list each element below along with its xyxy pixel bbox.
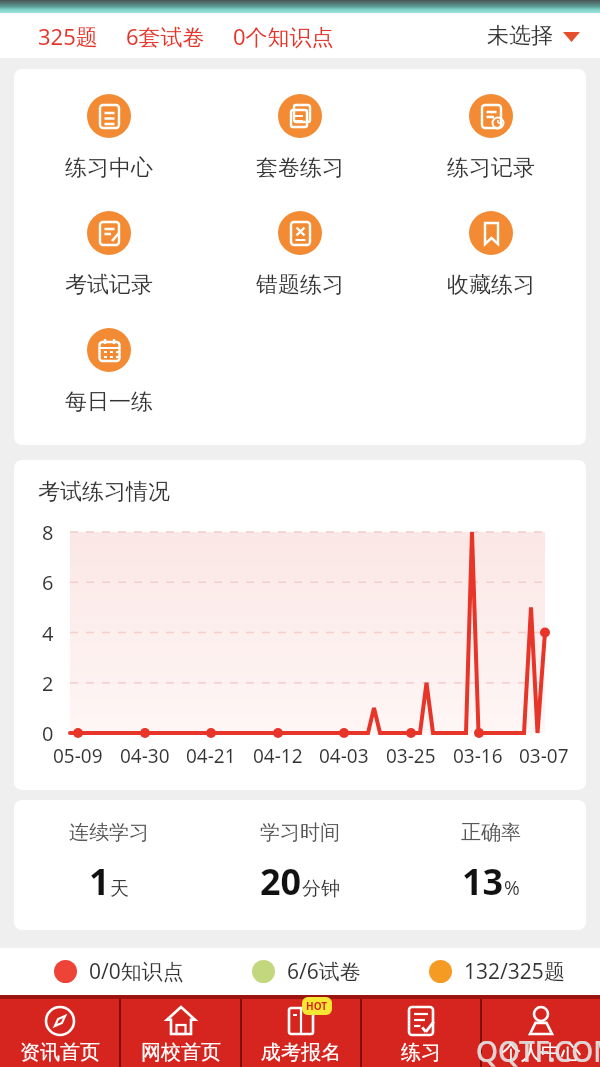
button[interactable]: 132/325题 <box>429 957 565 986</box>
staticText: 练习 <box>401 1040 441 1065</box>
button[interactable]: 连续学习 <box>14 820 204 906</box>
staticText: 04-12 <box>253 743 303 769</box>
staticText: 2 <box>42 670 54 697</box>
button[interactable]: 未选择 <box>487 22 580 50</box>
staticText: 04-21 <box>186 743 236 769</box>
staticText: 132/325题 <box>464 957 565 986</box>
button[interactable]: 325题 <box>38 21 98 51</box>
button[interactable]: 练习记录 <box>395 94 586 182</box>
staticText: 20 <box>260 857 302 906</box>
staticText: 套卷练习 <box>256 154 344 182</box>
staticText: 03-16 <box>453 743 503 769</box>
staticText: 天 <box>110 877 129 901</box>
button[interactable]: 错题练习 <box>204 211 395 299</box>
staticText: 13 <box>462 857 504 906</box>
button[interactable]: 练习 <box>362 999 480 1067</box>
staticText: 6/6试卷 <box>287 957 361 986</box>
button[interactable]: 0个知识点 <box>233 21 334 51</box>
staticText: 网校首页 <box>141 1040 221 1065</box>
staticText: 练习中心 <box>65 154 153 182</box>
button[interactable]: 网校首页 <box>121 999 240 1067</box>
staticText: 学习时间 <box>260 820 340 845</box>
staticText: 资讯首页 <box>20 1040 100 1065</box>
staticText: % <box>504 875 520 901</box>
staticText: 8 <box>42 519 54 546</box>
button[interactable]: 练习中心 <box>14 94 204 182</box>
staticText: 6 <box>42 569 54 596</box>
button[interactable]: 收藏练习 <box>395 211 586 299</box>
staticText: 4 <box>42 620 54 647</box>
staticText: 个人中心 <box>501 1040 581 1065</box>
staticText: 连续学习 <box>69 820 149 845</box>
button[interactable]: 正确率 <box>395 820 586 906</box>
button[interactable]: 6套试卷 <box>126 21 205 51</box>
staticText: HOT <box>306 999 328 1013</box>
staticText: 0/0知识点 <box>89 957 184 986</box>
staticText: 03-07 <box>519 743 569 769</box>
staticText: 错题练习 <box>256 271 344 299</box>
staticText: QQTF.COM <box>476 1032 600 1067</box>
button[interactable]: 套卷练习 <box>204 94 395 182</box>
button[interactable]: 个人中心 <box>482 999 600 1067</box>
button[interactable]: 0/0知识点 <box>54 957 184 986</box>
staticText: 考试练习情况 <box>38 478 170 506</box>
staticText: 成考报名 <box>261 1040 341 1065</box>
staticText: 0 <box>42 720 54 747</box>
staticText: 正确率 <box>461 820 521 845</box>
staticText: 每日一练 <box>65 388 153 416</box>
staticText: 05-09 <box>53 743 103 769</box>
staticText: 04-03 <box>319 743 369 769</box>
button[interactable]: 考试记录 <box>14 211 204 299</box>
staticText: 04-30 <box>120 743 170 769</box>
button[interactable]: 6/6试卷 <box>252 957 361 986</box>
button[interactable]: 资讯首页 <box>0 999 119 1067</box>
staticText: 收藏练习 <box>447 271 535 299</box>
staticText: 考试记录 <box>65 271 153 299</box>
button[interactable]: 每日一练 <box>14 328 204 416</box>
staticText: 03-25 <box>386 743 436 769</box>
staticText: 未选择 <box>487 22 553 50</box>
staticText: 练习记录 <box>447 154 535 182</box>
staticText: 分钟 <box>302 877 340 901</box>
staticText: 1 <box>89 857 110 906</box>
button[interactable]: HOT <box>242 999 360 1067</box>
button[interactable]: 学习时间 <box>204 820 395 906</box>
